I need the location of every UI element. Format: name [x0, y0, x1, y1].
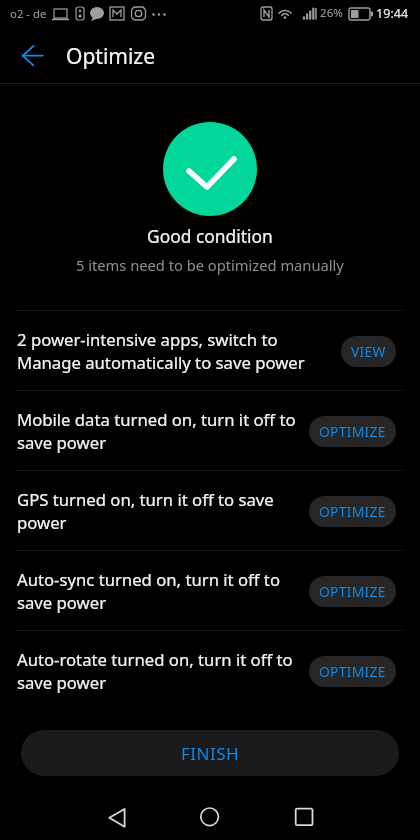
staticText: 5 items need to be optimized manually: [76, 255, 344, 275]
button[interactable]: OPTIMIZE: [309, 416, 396, 447]
staticText: o2 - de: [10, 6, 47, 22]
staticText: Mobile data turned on, turn it off to sa…: [17, 408, 297, 454]
button[interactable]: Auto-sync turned on, turn it off to save…: [0, 551, 420, 631]
button[interactable]: OPTIMIZE: [309, 496, 396, 527]
button[interactable]: FINISH: [21, 730, 399, 776]
staticText: Auto-rotate turned on, turn it off to sa…: [17, 648, 297, 694]
staticText: OPTIMIZE: [319, 582, 386, 601]
staticText: VIEW: [351, 342, 386, 361]
button[interactable]: Home: [192, 797, 228, 833]
staticText: GPS turned on, turn it off to save power: [17, 488, 297, 534]
staticText: OPTIMIZE: [319, 662, 386, 681]
staticText: Auto-sync turned on, turn it off to save…: [17, 568, 297, 614]
staticText: 2 power-intensive apps, switch to Manage…: [17, 328, 329, 374]
button[interactable]: Back: [96, 797, 132, 833]
staticText: 19:44: [376, 5, 409, 22]
button[interactable]: GPS turned on, turn it off to save power: [0, 471, 420, 551]
button[interactable]: Auto-rotate turned on, turn it off to sa…: [0, 631, 420, 711]
button[interactable]: Mobile data turned on, turn it off to sa…: [0, 391, 420, 471]
staticText: OPTIMIZE: [319, 422, 386, 441]
button[interactable]: OPTIMIZE: [309, 656, 396, 687]
staticText: Good condition: [147, 224, 273, 248]
button[interactable]: 2 power-intensive apps, switch to Manage…: [0, 311, 420, 391]
staticText: 26%: [320, 5, 343, 21]
staticText: OPTIMIZE: [319, 502, 386, 521]
button[interactable]: VIEW: [341, 336, 396, 367]
staticText: FINISH: [181, 742, 240, 765]
button[interactable]: Recents: [286, 797, 322, 833]
staticText: Optimize: [66, 42, 156, 71]
button[interactable]: Back: [5, 33, 45, 73]
button[interactable]: OPTIMIZE: [309, 576, 396, 607]
